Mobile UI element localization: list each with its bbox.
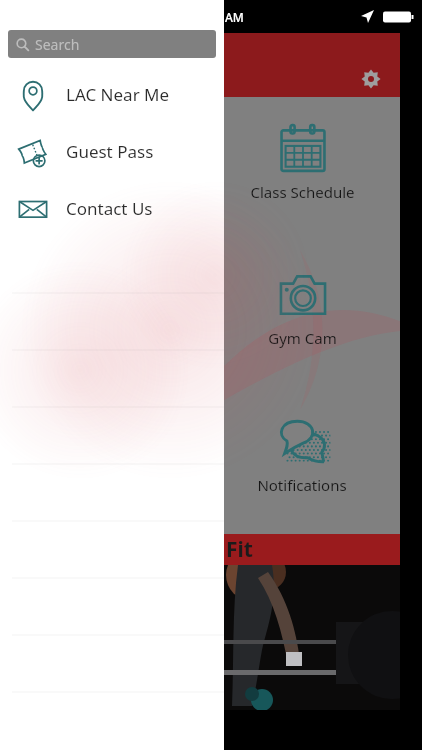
button[interactable]: Settings bbox=[357, 65, 385, 93]
staticText: Guest Pass bbox=[66, 140, 154, 163]
button[interactable]: Guest Pass bbox=[0, 123, 224, 180]
staticText: Search bbox=[35, 35, 80, 54]
staticText: Gym Cam bbox=[268, 328, 337, 348]
staticText: LAC Near Me bbox=[66, 83, 170, 106]
button[interactable]: Gym Cam bbox=[222, 268, 382, 364]
button[interactable]: Search bbox=[8, 30, 216, 58]
button[interactable]: Contact Us bbox=[0, 180, 224, 237]
staticText: Contact Us bbox=[66, 197, 153, 220]
staticText: Notifications bbox=[257, 475, 347, 495]
staticText: Class Schedule bbox=[250, 182, 355, 202]
button[interactable]: LAC Near Me bbox=[0, 66, 224, 123]
staticText: AM bbox=[225, 9, 244, 25]
button[interactable]: Notifications bbox=[222, 415, 382, 511]
staticText: Fit bbox=[226, 535, 253, 564]
button[interactable]: Class Schedule bbox=[222, 122, 382, 218]
